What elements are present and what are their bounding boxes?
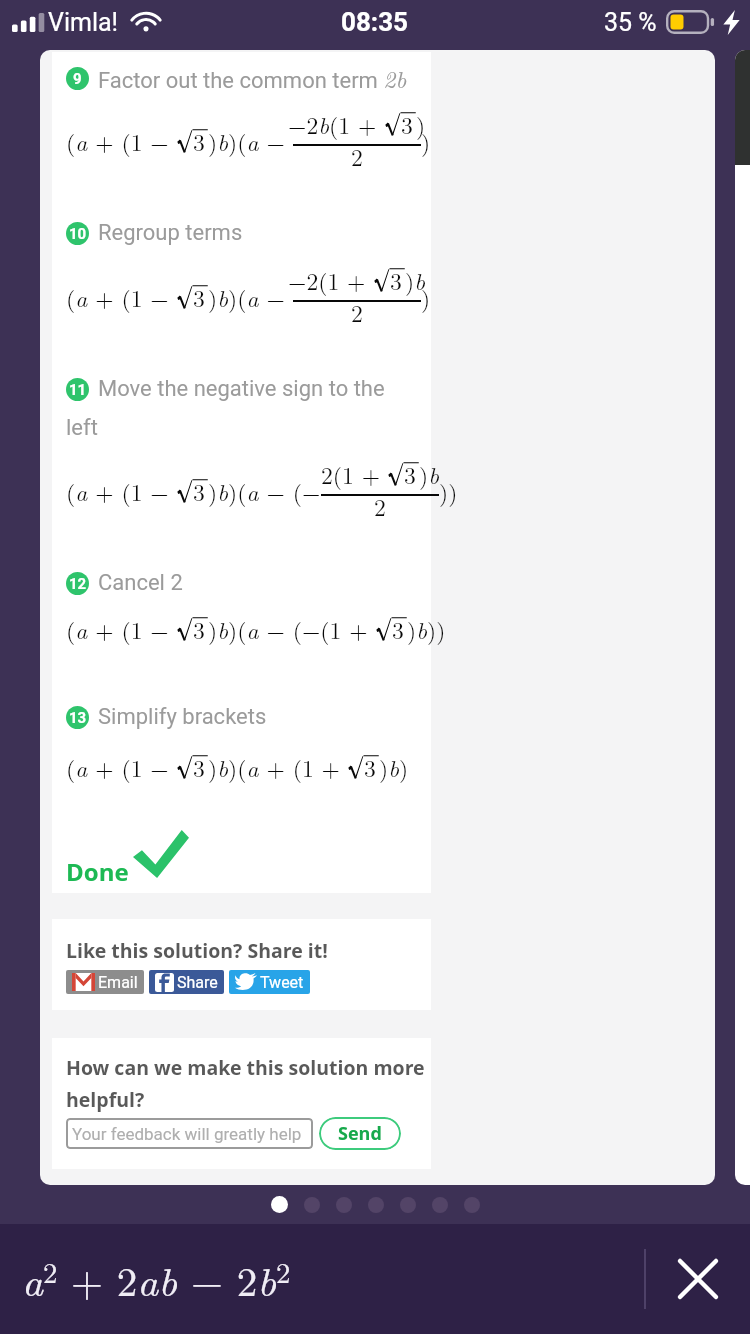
staticText: 2 [351, 140, 363, 173]
staticText: Move the negative sign to the [98, 376, 385, 402]
staticText: 9 [73, 70, 82, 88]
staticText: (a + (1 − [66, 613, 177, 646]
button[interactable]: Tweet [229, 970, 310, 994]
button[interactable] [304, 1197, 320, 1213]
staticText: How can we make this solution more [66, 1054, 425, 1081]
staticText: (a + (1 − [66, 281, 177, 314]
staticText: 3 [401, 108, 413, 141]
staticText: Vimla! [48, 8, 119, 37]
staticText: 12 [69, 575, 87, 593]
staticText: Like this solution? Share it! [66, 937, 328, 964]
staticText: Email [98, 973, 138, 992]
staticText: Tweet [260, 973, 304, 992]
staticText: 3 [193, 475, 205, 508]
staticText: )b)(a − [208, 281, 293, 314]
staticText: 35 % [604, 8, 657, 37]
button[interactable]: Send [319, 1117, 401, 1150]
staticText: 08:35 [341, 7, 409, 37]
staticText: 3 [404, 458, 416, 491]
staticText: helpful? [66, 1086, 145, 1113]
button[interactable]: Share [149, 970, 224, 994]
staticText: (a + (1 − [66, 125, 177, 158]
staticText: )b [419, 458, 440, 491]
button[interactable] [368, 1197, 384, 1213]
staticText: −2(1 + [288, 264, 374, 297]
staticText: )b)(a − [208, 125, 293, 158]
staticText: )b [405, 264, 426, 297]
staticText: 3 [392, 613, 404, 646]
staticText: a2 + 2ab − 2b2 [22, 1251, 291, 1308]
staticText: 13 [69, 709, 87, 727]
staticText: ) [416, 108, 426, 141]
staticText: (a + (1 − [66, 475, 177, 508]
staticText: Share [177, 973, 218, 992]
staticText: (a + (1 − [66, 751, 177, 784]
staticText: 3 [390, 264, 402, 297]
staticText: Done [66, 855, 129, 888]
staticText: Factor out the common term 2b [98, 62, 407, 95]
staticText: )b)(a − (−(1 + [208, 613, 376, 646]
staticText: Send [338, 1121, 382, 1146]
staticText: 2(1 + [321, 458, 388, 491]
staticText: Your feedback will greatly help u [72, 1124, 313, 1144]
staticText: ) [421, 281, 431, 314]
staticText: )b)(a − (− [208, 475, 321, 508]
staticText: 11 [69, 381, 87, 399]
staticText: 3 [193, 125, 205, 158]
staticText: 2 [351, 296, 363, 329]
staticText: 3 [193, 751, 205, 784]
staticText: )b) [379, 751, 409, 784]
button[interactable]: Email [66, 970, 144, 994]
staticText: 2 [374, 490, 386, 523]
staticText: −2b(1 + [288, 108, 385, 141]
staticText: )b)(a + (1 + [208, 751, 348, 784]
button[interactable]: Close [646, 1224, 750, 1334]
button[interactable] [464, 1197, 480, 1213]
staticText: ) [421, 125, 431, 158]
staticText: 3 [364, 751, 376, 784]
staticText: )b)) [407, 613, 446, 646]
staticText: Cancel 2 [98, 570, 183, 596]
staticText: 3 [193, 281, 205, 314]
button[interactable]: Your feedback will greatly help u [66, 1118, 313, 1149]
button[interactable] [432, 1197, 448, 1213]
button[interactable] [336, 1197, 352, 1213]
staticText: Simplify brackets [98, 704, 267, 730]
staticText: 3 [193, 613, 205, 646]
button[interactable] [271, 1196, 288, 1213]
staticText: Regroup terms [98, 220, 243, 246]
staticText: )) [439, 475, 458, 508]
button[interactable] [400, 1197, 416, 1213]
staticText: 10 [69, 225, 87, 243]
staticText: left [66, 415, 98, 441]
